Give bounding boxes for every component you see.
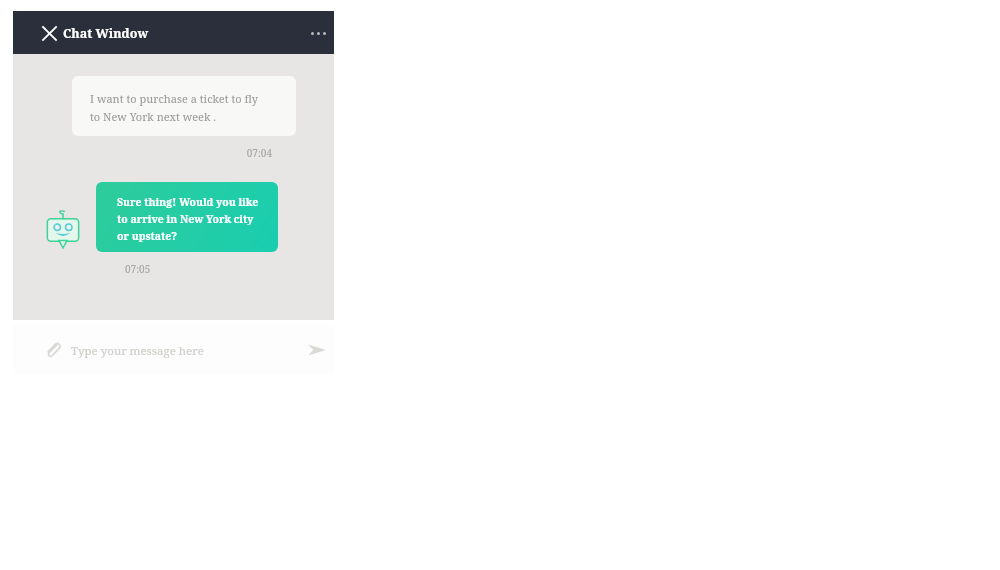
staticText: 07:04 [226, 146, 272, 160]
button[interactable]: Sure thing! Would you like [96, 182, 278, 252]
staticText: or upstate? [117, 229, 178, 243]
button[interactable]: More options [303, 22, 333, 44]
button[interactable]: Close chat window [37, 21, 61, 45]
staticText: to arrive in New York city [117, 212, 254, 226]
staticText: Sure thing! Would you like [117, 195, 259, 209]
staticText: Type your message here [71, 343, 204, 359]
button[interactable]: I want to purchase a ticket to fly [72, 76, 296, 136]
staticText: to New York next week . [90, 109, 216, 124]
button[interactable]: Attach file [40, 337, 66, 363]
staticText: Chat Window [63, 25, 149, 42]
button[interactable]: Send message [304, 337, 330, 363]
staticText: 07:05 [125, 262, 151, 276]
staticText: I want to purchase a ticket to fly [90, 91, 258, 106]
